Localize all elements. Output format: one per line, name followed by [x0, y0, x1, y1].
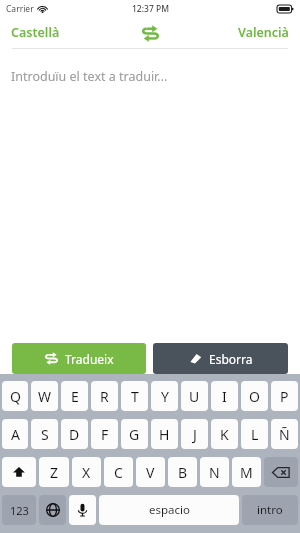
staticText: L: [251, 425, 259, 444]
button[interactable]: Q: [2, 381, 28, 411]
staticText: D: [69, 425, 80, 444]
staticText: 123: [10, 503, 29, 518]
button[interactable]: Change keyboard: [39, 495, 66, 525]
button[interactable]: Valencià: [227, 19, 300, 46]
staticText: F: [101, 425, 109, 444]
button[interactable]: Backspace: [264, 457, 298, 487]
button[interactable]: Swap languages: [137, 20, 163, 46]
staticText: M: [240, 463, 253, 482]
button[interactable]: Tradueix: [12, 343, 146, 374]
staticText: Tradueix: [65, 351, 114, 367]
button[interactable]: I: [211, 381, 238, 411]
staticText: X: [82, 463, 91, 482]
button[interactable]: O: [241, 381, 268, 411]
button[interactable]: S: [31, 419, 58, 449]
button[interactable]: intro: [242, 495, 298, 525]
button[interactable]: K: [211, 419, 238, 449]
button[interactable]: Esborra: [153, 343, 288, 374]
staticText: Valencià: [238, 24, 289, 41]
staticText: R: [100, 387, 109, 406]
staticText: Ñ: [279, 425, 290, 444]
button[interactable]: C: [104, 457, 133, 487]
staticText: J: [193, 425, 197, 444]
button[interactable]: M: [232, 457, 261, 487]
button[interactable]: E: [61, 381, 88, 411]
button[interactable]: F: [91, 419, 118, 449]
button[interactable]: Introduïu el text a traduir...: [0, 49, 300, 343]
staticText: H: [159, 425, 170, 444]
staticText: W: [38, 387, 52, 406]
button[interactable]: P: [271, 381, 298, 411]
staticText: C: [114, 463, 123, 482]
staticText: N: [209, 463, 220, 482]
button[interactable]: T: [121, 381, 148, 411]
button[interactable]: J: [181, 419, 208, 449]
button[interactable]: H: [151, 419, 178, 449]
staticText: Z: [50, 463, 59, 482]
button[interactable]: D: [61, 419, 88, 449]
staticText: K: [220, 425, 229, 444]
button[interactable]: L: [241, 419, 268, 449]
button[interactable]: Castellà: [0, 19, 71, 46]
staticText: Q: [10, 387, 21, 406]
staticText: Introduïu el text a traduir...: [11, 68, 168, 85]
button[interactable]: V: [136, 457, 165, 487]
staticText: B: [178, 463, 188, 482]
button[interactable]: Z: [39, 457, 69, 487]
staticText: Esborra: [209, 351, 253, 367]
button[interactable]: 123: [2, 495, 36, 525]
staticText: G: [129, 425, 140, 444]
staticText: O: [249, 387, 260, 406]
button[interactable]: B: [168, 457, 197, 487]
button[interactable]: W: [31, 381, 58, 411]
staticText: P: [280, 387, 289, 406]
staticText: S: [41, 425, 49, 444]
staticText: Y: [161, 387, 169, 406]
staticText: E: [71, 387, 79, 406]
staticText: V: [146, 463, 155, 482]
staticText: I: [222, 387, 227, 406]
button[interactable]: N: [200, 457, 229, 487]
button[interactable]: espacio: [99, 495, 239, 525]
button[interactable]: G: [121, 419, 148, 449]
staticText: T: [131, 387, 139, 406]
staticText: espacio: [149, 502, 190, 518]
staticText: Carrier: [6, 3, 34, 15]
staticText: Castellà: [11, 24, 60, 41]
staticText: U: [189, 387, 200, 406]
button[interactable]: X: [72, 457, 101, 487]
staticText: intro: [257, 502, 283, 518]
button[interactable]: Ñ: [271, 419, 298, 449]
button[interactable]: U: [181, 381, 208, 411]
staticText: A: [11, 425, 20, 444]
button[interactable]: Dictation: [69, 495, 96, 525]
button[interactable]: Y: [151, 381, 178, 411]
staticText: 12:37 PM: [132, 3, 169, 15]
button[interactable]: A: [2, 419, 28, 449]
button[interactable]: R: [91, 381, 118, 411]
button[interactable]: Shift: [2, 457, 36, 487]
